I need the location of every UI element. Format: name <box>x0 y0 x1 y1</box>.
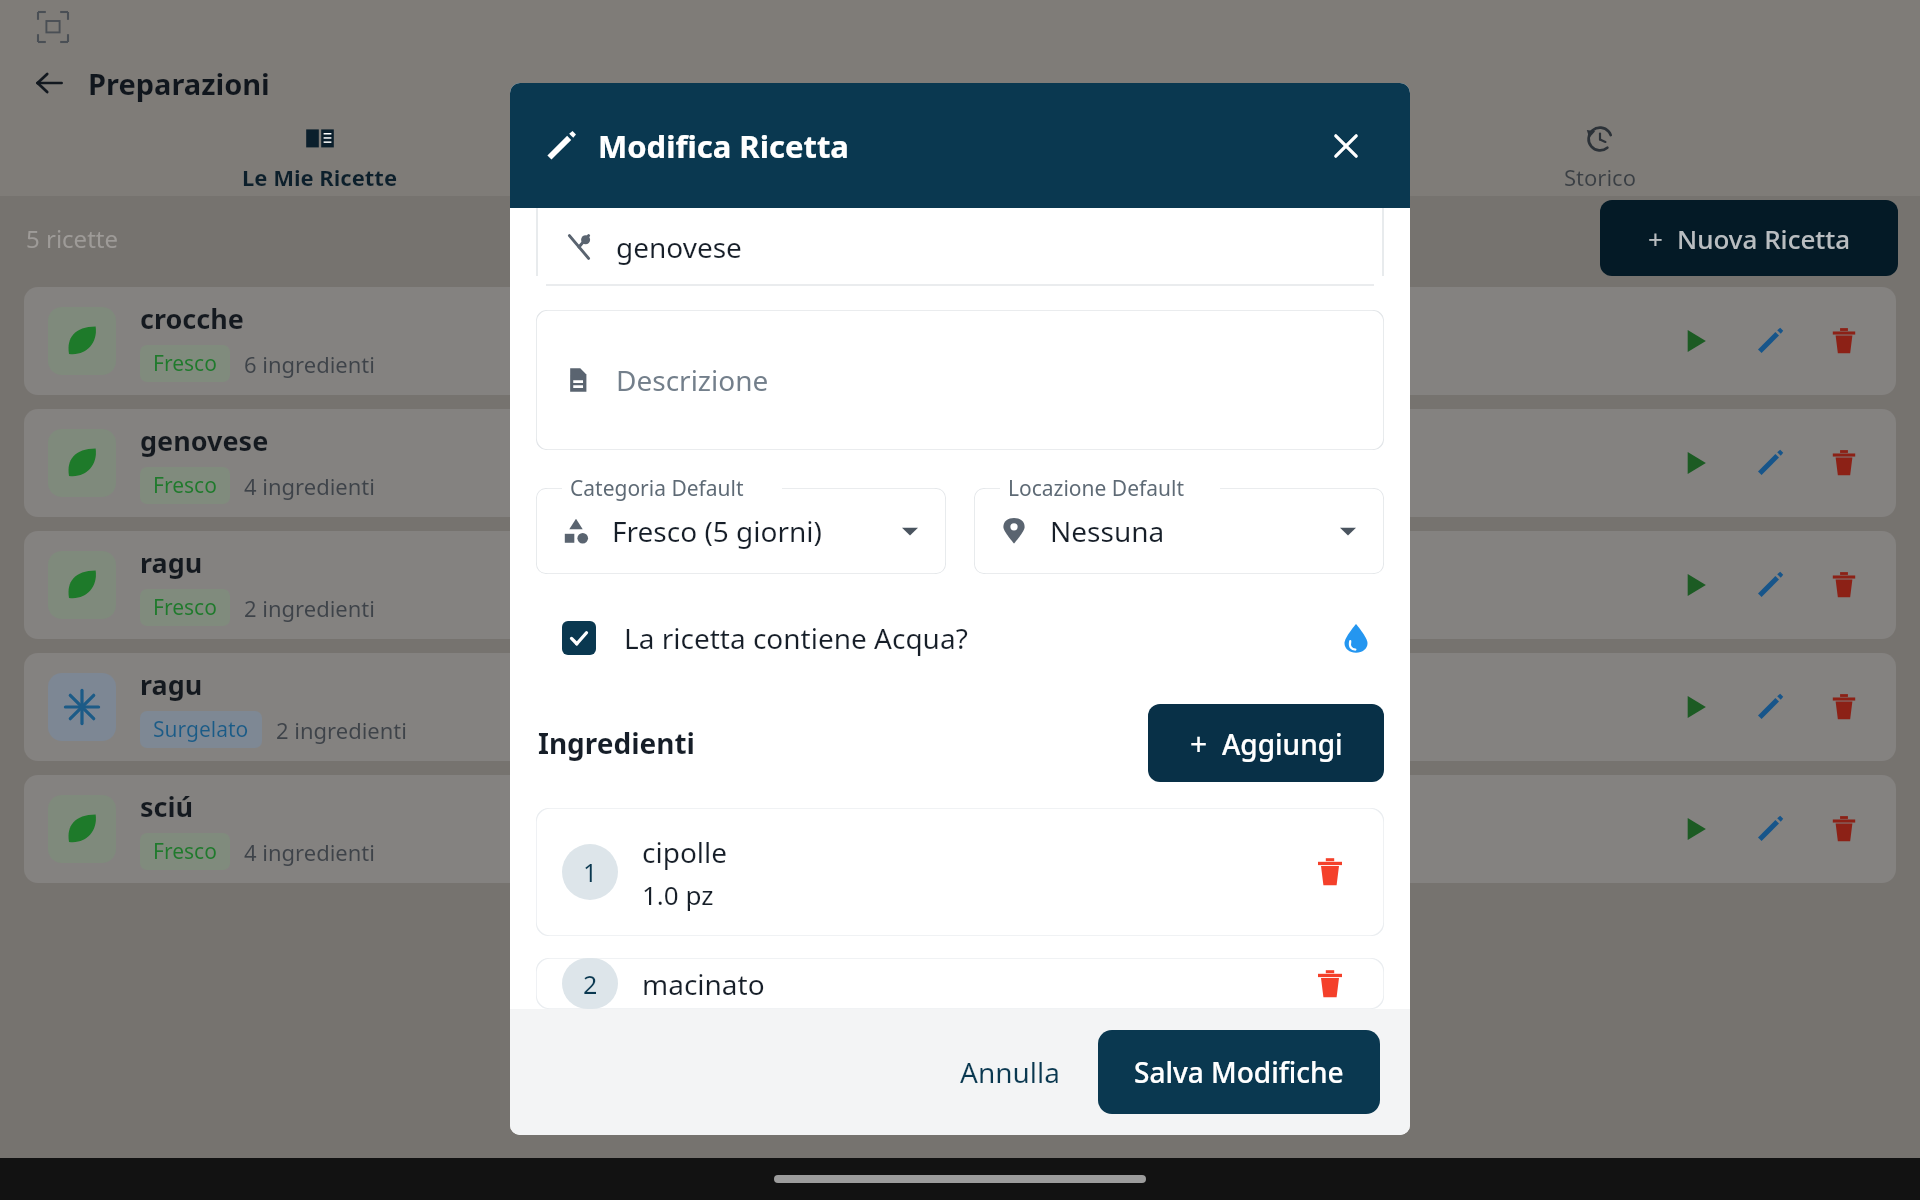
button[interactable]: crocche <box>24 287 1896 395</box>
staticText: 1.0 pz <box>642 877 714 912</box>
staticText: Aggiungi <box>1222 725 1343 763</box>
staticText: Categoria Default <box>570 474 744 503</box>
staticText: Fresco <box>153 837 217 866</box>
staticText: Locazione Default <box>1008 474 1185 503</box>
button[interactable]: Modifica <box>1742 679 1798 735</box>
staticText: Annulla <box>960 1053 1060 1091</box>
staticText: 2 ingredienti <box>244 593 375 623</box>
button[interactable] <box>640 114 1280 196</box>
button[interactable]: Avvia <box>1668 313 1724 369</box>
button[interactable]: Elimina <box>1816 801 1872 857</box>
button[interactable]: Modifica <box>1742 313 1798 369</box>
staticText: 1 <box>583 855 598 889</box>
button[interactable]: Indietro <box>22 56 76 110</box>
button[interactable]: Avvia <box>1668 679 1724 735</box>
staticText: Fresco <box>153 593 217 622</box>
staticText: Preparazioni <box>88 64 270 103</box>
staticText: + <box>1190 723 1208 764</box>
staticText: genovese <box>140 422 269 459</box>
button[interactable]: Storico <box>1280 114 1920 196</box>
staticText: Descrizione <box>616 361 769 399</box>
button[interactable]: Modifica <box>1742 801 1798 857</box>
staticText: crocche <box>140 300 244 337</box>
button[interactable]: Elimina <box>1816 313 1872 369</box>
staticText: ragu <box>140 544 203 581</box>
button[interactable]: Elimina <box>1816 679 1872 735</box>
staticText: Nessuna <box>1050 512 1165 550</box>
staticText: 2 ingredienti <box>276 715 407 745</box>
button[interactable]: genovese <box>24 409 1896 517</box>
button[interactable]: La ricetta contiene Acqua? <box>536 612 1384 664</box>
button[interactable]: + <box>1148 704 1384 782</box>
button[interactable]: sciú <box>24 775 1896 883</box>
button[interactable]: Rimuovi ingrediente <box>1302 844 1358 900</box>
staticText: Fresco <box>153 471 217 500</box>
button[interactable]: Le Mie Ricette <box>0 114 640 196</box>
staticText: 4 ingredienti <box>244 471 375 501</box>
staticText: ragu <box>140 666 203 703</box>
staticText: sciú <box>140 788 194 825</box>
staticText: 6 ingredienti <box>244 349 375 379</box>
staticText: Fresco (5 giorni) <box>612 512 822 550</box>
button[interactable]: Elimina <box>1816 435 1872 491</box>
staticText: Ingredienti <box>538 724 695 762</box>
staticText: Salva Modifiche <box>1134 1053 1344 1091</box>
button[interactable]: Fresco (5 giorni) <box>536 488 946 574</box>
staticText: Nuova Ricetta <box>1677 221 1851 256</box>
staticText: 4 ingredienti <box>244 837 375 867</box>
button[interactable]: Nessuna <box>974 488 1384 574</box>
staticText: macinato <box>642 965 765 1003</box>
button[interactable]: Annulla <box>936 1037 1084 1107</box>
staticText: 2 <box>583 967 598 1001</box>
button[interactable]: Salva Modifiche <box>1098 1030 1380 1114</box>
button[interactable]: Avvia <box>1668 801 1724 857</box>
button[interactable]: Chiudi <box>1318 118 1374 174</box>
staticText: cipolle <box>642 833 728 871</box>
button[interactable]: Avvia <box>1668 557 1724 613</box>
button[interactable]: ragu <box>24 653 1896 761</box>
button[interactable]: Elimina <box>1816 557 1872 613</box>
staticText: + <box>1648 221 1663 256</box>
staticText: Storico <box>1564 162 1636 192</box>
staticText: La ricetta contiene Acqua? <box>624 619 968 657</box>
button[interactable]: + <box>1600 200 1898 276</box>
button[interactable]: ragu <box>24 531 1896 639</box>
staticText: Surgelato <box>153 715 249 744</box>
staticText: genovese <box>616 228 742 266</box>
button[interactable]: Modifica <box>1742 557 1798 613</box>
button[interactable]: Avvia <box>1668 435 1724 491</box>
button[interactable]: 1 <box>536 808 1384 936</box>
button[interactable]: Rimuovi ingrediente <box>1302 958 1358 1009</box>
staticText: Fresco <box>153 349 217 378</box>
button[interactable]: Modifica <box>1742 435 1798 491</box>
button[interactable]: 2 <box>536 958 1384 1009</box>
staticText: Le Mie Ricette <box>242 162 398 192</box>
staticText: 5 ricette <box>26 222 118 255</box>
staticText: Modifica Ricetta <box>598 125 849 167</box>
